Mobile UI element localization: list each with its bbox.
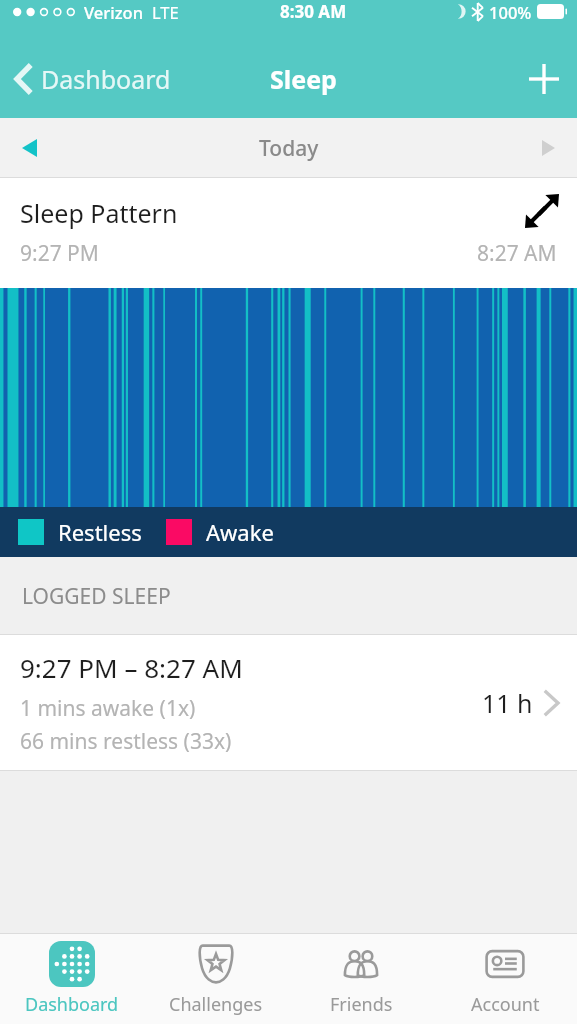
staticText: Sleep Pattern	[20, 196, 178, 230]
staticText: 9:27 PM – 8:27 AM	[20, 650, 243, 685]
button[interactable]: Account	[433, 934, 577, 1024]
staticText: 100%	[489, 1, 532, 23]
staticText: Account	[471, 992, 540, 1017]
staticText: Friends	[330, 992, 393, 1017]
staticText: 66 mins restless (33x)	[20, 727, 232, 756]
staticText: Sleep	[270, 62, 337, 96]
staticText: 8:27 AM	[477, 239, 557, 268]
button[interactable]: Previous day	[0, 123, 59, 173]
staticText: Dashboard	[25, 992, 119, 1017]
staticText: Challenges	[169, 992, 263, 1017]
staticText: Restless	[58, 517, 142, 547]
button[interactable]: Friends	[289, 934, 433, 1024]
staticText: Verizon	[84, 1, 144, 23]
other: Expand chart	[525, 178, 577, 228]
button[interactable]: 9:27 PM – 8:27 AM	[0, 635, 577, 771]
button[interactable]: Add sleep log	[511, 50, 577, 108]
staticText: 1 mins awake (1x)	[20, 694, 196, 723]
staticText: Dashboard	[41, 62, 171, 96]
button[interactable]: Sleep Pattern	[0, 178, 577, 288]
staticText: LTE	[152, 1, 179, 23]
staticText: Awake	[206, 517, 274, 547]
button[interactable]: Dashboard	[0, 934, 144, 1024]
staticText: 8:30 AM	[280, 0, 347, 23]
other: Next day	[520, 124, 577, 172]
button[interactable]: Challenges	[144, 934, 288, 1024]
button[interactable]: Dashboard	[0, 56, 183, 102]
staticText: 11 h	[482, 686, 533, 720]
staticText: Today	[259, 134, 319, 163]
staticText: 9:27 PM	[20, 239, 99, 268]
staticText: LOGGED SLEEP	[22, 582, 171, 611]
